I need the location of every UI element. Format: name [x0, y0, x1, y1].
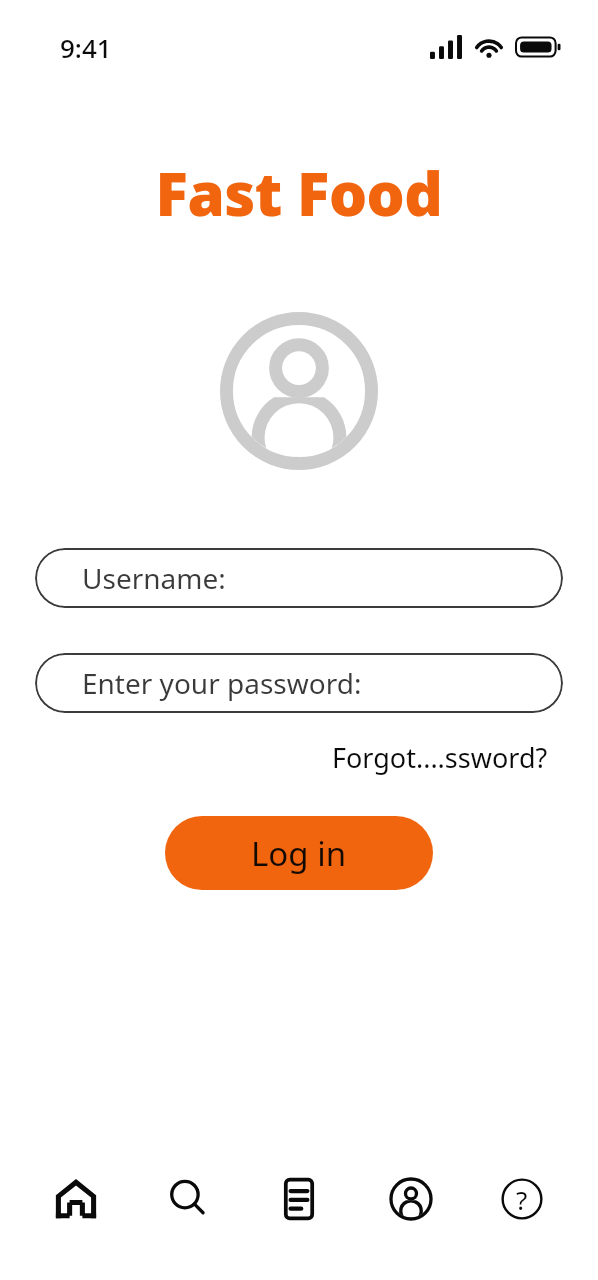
button[interactable]: Help: [490, 1167, 554, 1231]
button[interactable]: Password input field: [35, 653, 563, 713]
staticText: Log in: [251, 831, 347, 876]
staticText: Enter your password:: [82, 664, 362, 702]
button[interactable]: Forgot....ssword?: [328, 735, 552, 780]
staticText: Fast Food: [0, 152, 598, 234]
button[interactable]: Log in: [165, 816, 433, 890]
staticText: Username:: [82, 559, 226, 597]
button[interactable]: Search: [156, 1167, 220, 1231]
button[interactable]: Home: [44, 1167, 108, 1231]
button[interactable]: Menu: [267, 1167, 331, 1231]
staticText: 9:41: [60, 30, 112, 65]
staticText: Forgot....ssword?: [332, 739, 548, 776]
staticText: ?: [516, 1182, 528, 1217]
button[interactable]: Account: [379, 1167, 443, 1231]
button[interactable]: Username input field: [35, 548, 563, 608]
